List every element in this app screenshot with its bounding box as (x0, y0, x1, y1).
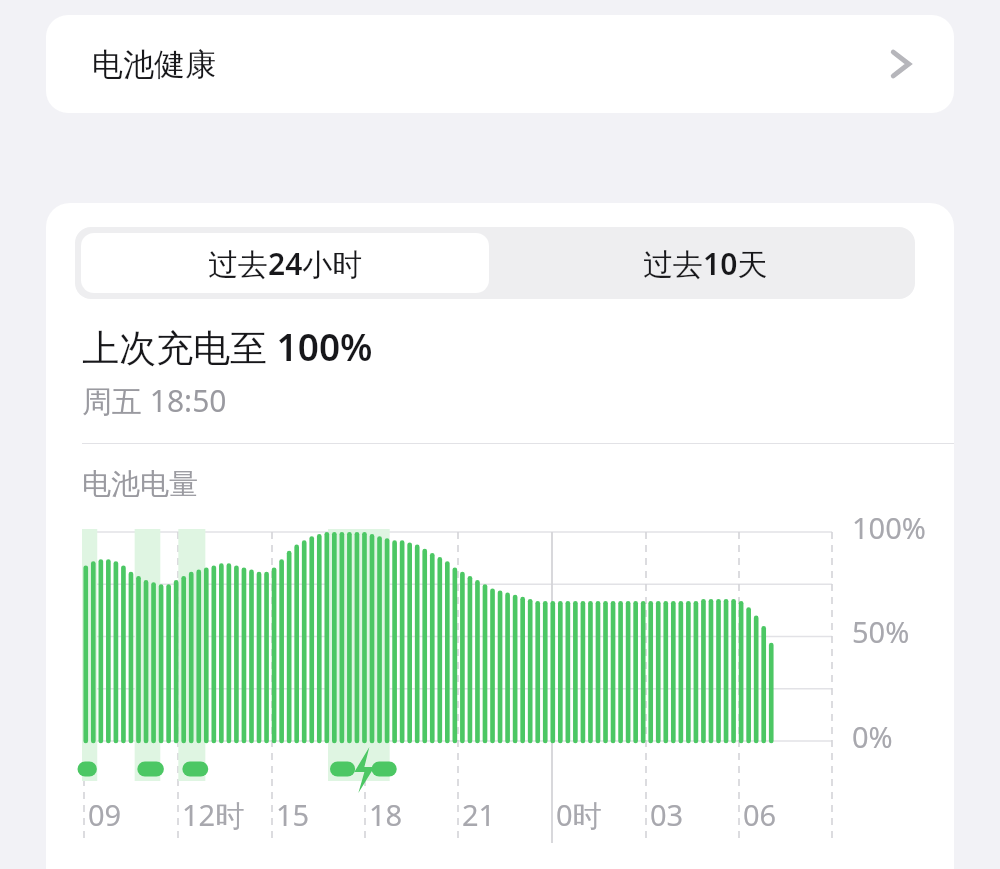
staticText: 15 (276, 795, 310, 834)
staticText: 12时 (182, 795, 245, 835)
other: 电池健康详情 (890, 46, 912, 82)
staticText: 09 (88, 795, 122, 834)
button[interactable]: 电池健康 (46, 15, 954, 113)
staticText: 06 (743, 795, 777, 834)
staticText: 电池健康 (92, 45, 216, 84)
staticText: 0时 (556, 795, 602, 835)
button[interactable]: 过去10天 (495, 227, 915, 299)
staticText: 0% (852, 717, 893, 756)
staticText: 03 (650, 795, 684, 834)
staticText: 过去10天 (643, 243, 768, 284)
staticText: 21 (462, 795, 496, 834)
button[interactable]: 过去24小时 (81, 233, 489, 293)
staticText: 50% (852, 612, 910, 651)
staticText: 周五 18:50 (82, 380, 227, 421)
staticText: 过去24小时 (208, 243, 363, 284)
staticText: 电池电量 (82, 466, 198, 503)
staticText: 100% (852, 508, 926, 547)
staticText: 上次充电至 100% (82, 321, 373, 372)
staticText: 18 (369, 795, 403, 834)
